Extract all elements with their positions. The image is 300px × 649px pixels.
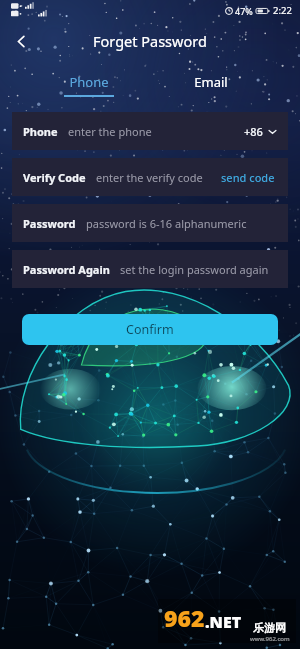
button[interactable]: Phone <box>28 70 150 100</box>
staticText: enter the phone <box>68 124 238 139</box>
staticText: send code <box>221 170 275 185</box>
staticText: Phone <box>69 73 109 91</box>
button[interactable]: Confirm <box>22 314 278 345</box>
staticText: Email <box>194 73 228 91</box>
staticText: +86 <box>244 124 263 139</box>
staticText: Password <box>23 216 76 231</box>
staticText: Password Again <box>23 262 110 277</box>
staticText: 2:22 <box>273 4 292 17</box>
staticText: 乐游网 <box>253 621 286 635</box>
button[interactable]: Verify Code <box>12 158 288 196</box>
button[interactable]: Phone <box>12 112 288 150</box>
staticText: 962 <box>164 602 205 633</box>
staticText: password is 6-16 alphanumeric <box>86 216 277 231</box>
button[interactable]: send code <box>219 168 277 187</box>
staticText: Confirm <box>126 321 174 338</box>
staticText: Verify Code <box>23 170 86 185</box>
button[interactable]: Password <box>12 204 288 242</box>
staticText: enter the verify code <box>96 170 213 185</box>
staticText: Phone <box>23 124 58 139</box>
staticText: set the login password again <box>120 262 277 277</box>
staticText: .NET <box>205 611 242 633</box>
button[interactable]: Password Again <box>12 250 288 288</box>
button[interactable]: Email <box>150 70 272 100</box>
staticText: Forget Password <box>93 31 207 51</box>
staticText: www.962.com <box>250 635 290 643</box>
staticText: 47% <box>235 5 253 17</box>
button[interactable]: Back <box>4 24 38 58</box>
